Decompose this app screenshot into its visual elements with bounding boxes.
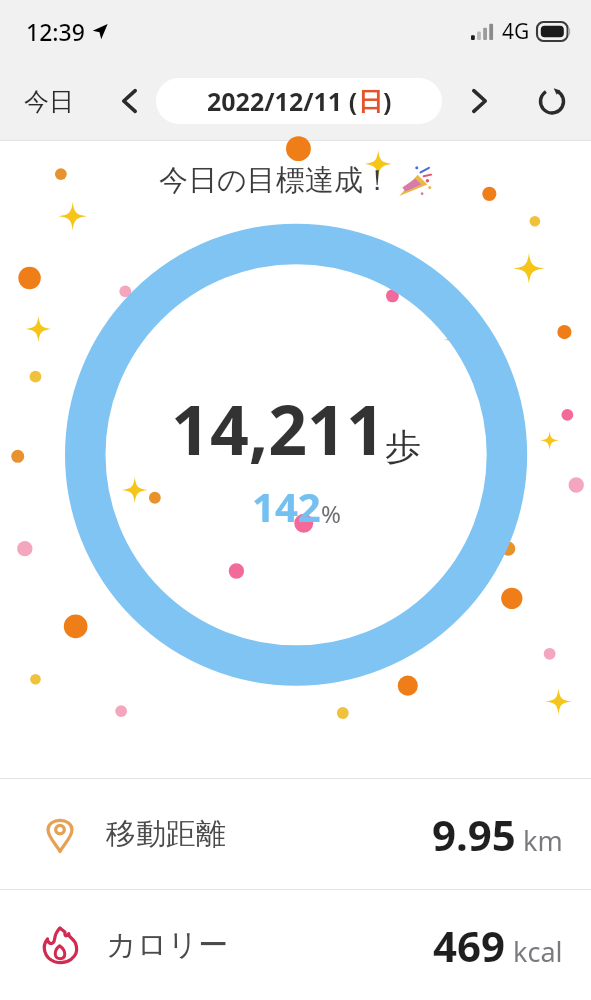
button[interactable]: 今日 bbox=[14, 78, 84, 125]
staticText: kcal bbox=[513, 933, 563, 970]
staticText: 9.95 bbox=[432, 806, 516, 863]
staticText: 469 bbox=[433, 917, 506, 974]
staticText: % bbox=[321, 497, 341, 530]
button[interactable]: Refresh bbox=[525, 74, 579, 128]
staticText: 142 bbox=[252, 479, 321, 533]
staticText: 4G bbox=[502, 17, 530, 46]
button[interactable]: Previous day bbox=[104, 75, 156, 127]
staticText: 歩 bbox=[385, 424, 421, 469]
staticText: km bbox=[523, 822, 563, 859]
staticText: ) bbox=[383, 84, 392, 118]
staticText: 日 bbox=[358, 86, 383, 117]
button[interactable]: 移動距離 bbox=[0, 779, 591, 889]
button[interactable]: Next day bbox=[453, 75, 505, 127]
staticText: 今日 bbox=[24, 86, 74, 117]
staticText: 移動距離 bbox=[106, 815, 226, 853]
staticText: 2022/12/11 ( bbox=[207, 84, 358, 118]
button[interactable]: カロリー bbox=[0, 890, 591, 1000]
staticText: カロリー bbox=[106, 926, 229, 964]
button[interactable]: 2022/12/11 ( bbox=[156, 78, 442, 124]
staticText: 14,211 bbox=[171, 382, 385, 475]
staticText: 今日の目標達成！ bbox=[159, 162, 392, 199]
staticText: 12:39 bbox=[26, 16, 85, 47]
